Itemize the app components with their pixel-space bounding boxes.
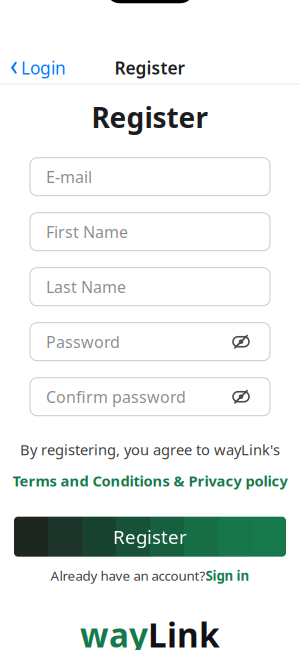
button[interactable]: Sign in [205,565,249,586]
staticText: By registering, you agree to wayLink's [20,440,280,459]
button[interactable]: Terms and Conditions & Privacy policy [8,469,291,493]
staticText: Already have an account? [50,567,205,584]
staticText: Link [148,612,220,650]
button[interactable]: Show Confirm password [228,382,254,412]
button[interactable]: Register [14,517,286,557]
button[interactable]: Show Password [228,327,254,357]
staticText: Terms and Conditions & Privacy policy [12,471,287,491]
button[interactable]: Login [2,50,74,85]
staticText: Register [113,524,187,549]
staticText: Register [91,98,208,136]
staticText: Last Name [46,276,126,297]
staticText: way [80,612,148,650]
staticText: E-mail [46,166,92,187]
staticText: First Name [46,221,128,242]
staticText: Login [21,56,66,79]
staticText: Confirm password [46,386,186,407]
staticText: Password [46,331,120,352]
staticText: Register [114,56,185,79]
staticText: Sign in [205,567,249,584]
